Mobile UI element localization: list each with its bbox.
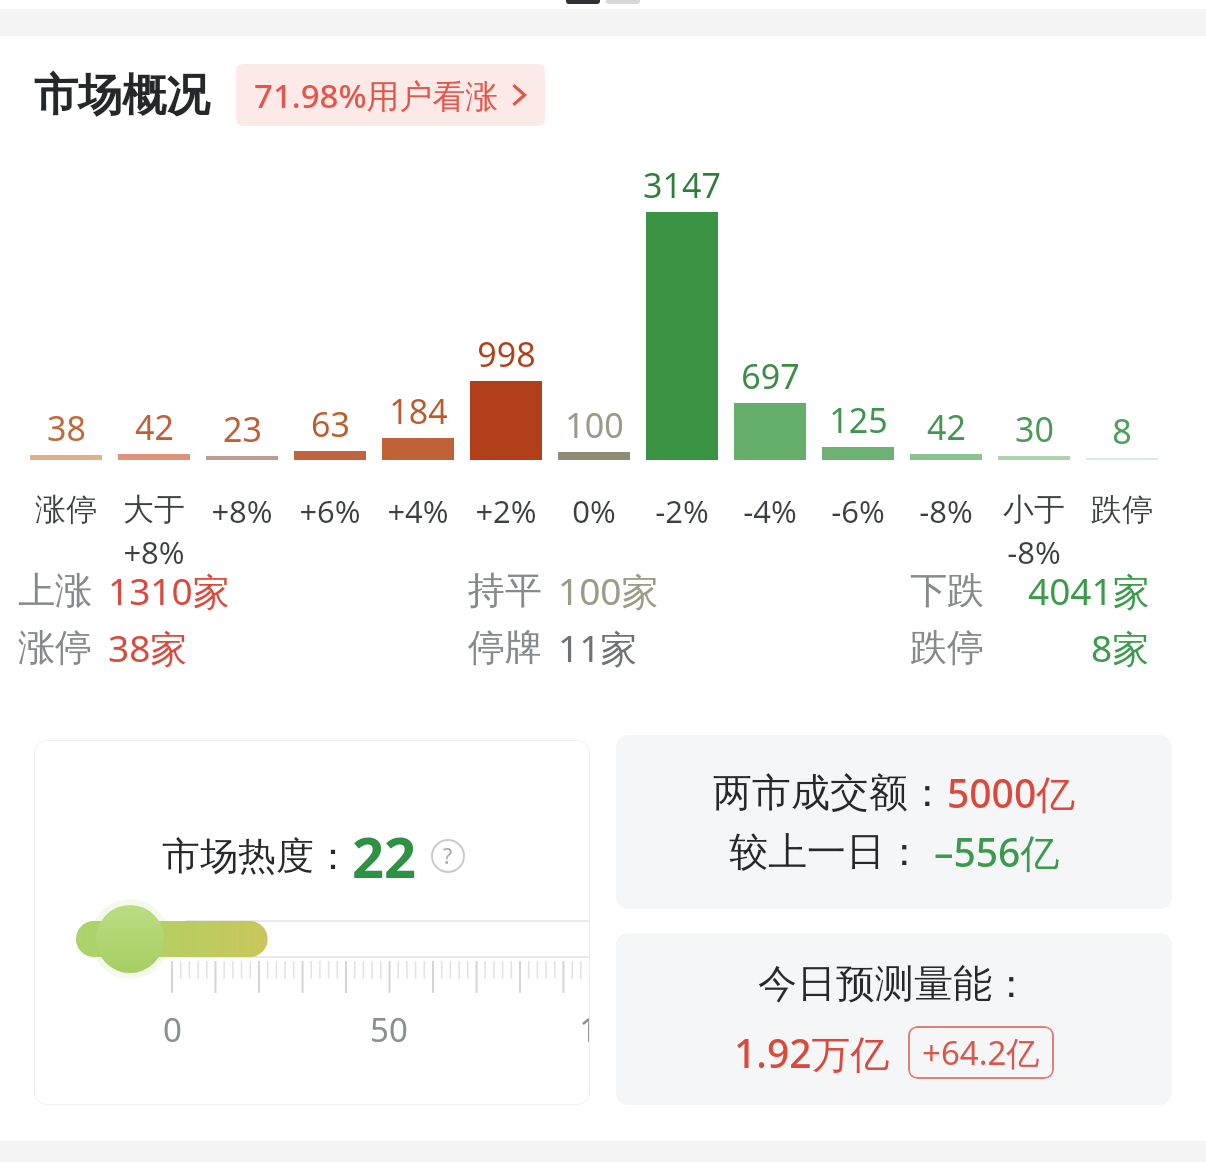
staticText: 3147	[643, 162, 721, 208]
staticText: 大于	[123, 490, 185, 529]
staticText: 今日预测量能：	[758, 959, 1031, 1008]
staticText: 125	[829, 397, 888, 443]
staticText: 30	[1015, 406, 1054, 452]
staticText: 跌停	[910, 624, 984, 671]
staticText: 50	[370, 1007, 408, 1052]
staticText: 市场热度：	[162, 832, 352, 880]
staticText: 市场概况	[34, 68, 210, 123]
staticText: 63	[311, 401, 350, 447]
staticText: 184	[389, 388, 448, 434]
staticText: 5000亿	[947, 766, 1076, 819]
button[interactable]: 涨停	[18, 622, 188, 673]
staticText: 23	[223, 406, 262, 452]
staticText: 38家	[108, 622, 188, 673]
staticText: 0%	[572, 490, 616, 532]
button[interactable]: 停牌	[468, 622, 638, 673]
staticText: 8	[1112, 408, 1132, 454]
staticText: 持平	[468, 567, 542, 614]
staticText: 涨停	[35, 490, 97, 529]
staticText: -8%	[919, 490, 973, 532]
staticText: 0	[163, 1007, 182, 1052]
staticText: 998	[477, 331, 536, 377]
staticText: –556亿	[934, 825, 1060, 878]
staticText: 22	[352, 818, 417, 894]
staticText: 42	[135, 404, 174, 450]
staticText: 8家	[1091, 622, 1150, 673]
staticText: +2%	[475, 490, 537, 532]
staticText: 38	[47, 405, 86, 451]
staticText: 下跌	[910, 567, 984, 614]
button[interactable]: 71.98%用户看涨	[236, 64, 545, 126]
staticText: 涨停	[18, 624, 92, 671]
button[interactable]: 今日预测量能：	[616, 933, 1172, 1105]
staticText: +6%	[299, 490, 361, 532]
staticText: +4%	[387, 490, 449, 532]
staticText: 697	[741, 353, 800, 399]
staticText: 停牌	[468, 624, 542, 671]
button[interactable]: +64.2亿	[908, 1026, 1054, 1079]
button[interactable]: 跌停	[910, 622, 1150, 673]
staticText: 100	[579, 1007, 590, 1052]
staticText: +8%	[211, 490, 273, 532]
staticText: -6%	[831, 490, 885, 532]
staticText: 100家	[558, 565, 659, 616]
staticText: -4%	[743, 490, 797, 532]
button[interactable]: 说明	[431, 839, 465, 873]
staticText: 两市成交额：	[713, 768, 947, 817]
staticText: 42	[927, 404, 966, 450]
staticText: +64.2亿	[922, 1030, 1040, 1075]
staticText: 4041家	[1028, 565, 1150, 616]
staticText: -2%	[655, 490, 709, 532]
button[interactable]: 市场热度：	[34, 740, 590, 1105]
staticText: -8%	[1007, 531, 1061, 573]
staticText: 1.92万亿	[734, 1026, 890, 1079]
button[interactable]: 持平	[468, 565, 659, 616]
staticText: 跌停	[1091, 490, 1153, 529]
button[interactable]: 上涨	[18, 565, 230, 616]
staticText: 100	[565, 402, 624, 448]
staticText: 71.98%用户看涨	[254, 73, 499, 117]
staticText: 上涨	[18, 567, 92, 614]
staticText: 小于	[1003, 490, 1065, 529]
staticText: 1310家	[108, 565, 230, 616]
staticText: 11家	[558, 622, 638, 673]
staticText: 较上一日：	[729, 827, 924, 876]
staticText: +8%	[123, 531, 185, 573]
staticText: ?	[443, 842, 453, 871]
button[interactable]: 两市成交额：	[616, 735, 1172, 909]
button[interactable]: 下跌	[910, 565, 1150, 616]
